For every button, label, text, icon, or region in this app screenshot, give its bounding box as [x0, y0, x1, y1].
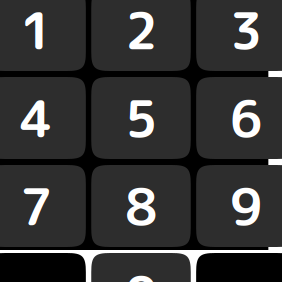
button[interactable]: 8 [91, 165, 191, 247]
button[interactable]: 0 [91, 253, 191, 282]
staticText: 2 [125, 0, 157, 65]
staticText: 7 [20, 171, 52, 241]
staticText: 3 [230, 0, 262, 65]
button[interactable]: 5 [91, 77, 191, 159]
staticText: 4 [20, 83, 52, 153]
button[interactable]: 3 [196, 0, 282, 71]
button[interactable]: 7 [0, 165, 86, 247]
button[interactable]: 2 [91, 0, 191, 71]
staticText: 9 [230, 171, 262, 241]
staticText: 6 [230, 83, 262, 153]
staticText: 1 [20, 0, 52, 65]
button[interactable]: 4 [0, 77, 86, 159]
staticText: 5 [125, 83, 157, 153]
staticText: 8 [125, 171, 157, 241]
button[interactable]: 1 [0, 0, 86, 71]
button[interactable]: 9 [196, 165, 282, 247]
staticText: 0 [125, 259, 157, 282]
button[interactable]: 6 [196, 77, 282, 159]
